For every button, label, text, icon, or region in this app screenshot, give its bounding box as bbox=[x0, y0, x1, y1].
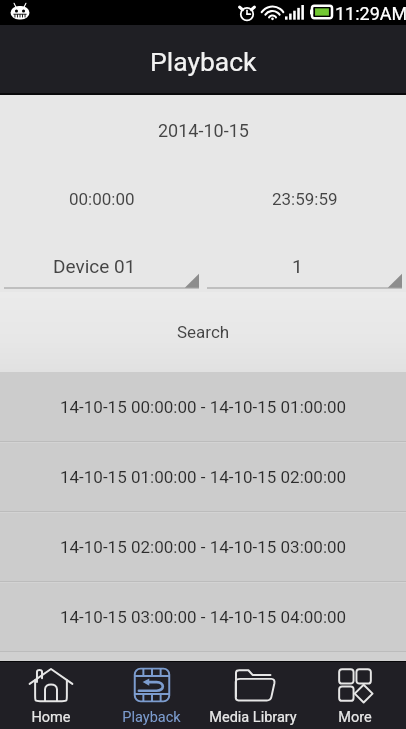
button[interactable]: 00:00:00 bbox=[0, 166, 203, 232]
button[interactable]: Playback bbox=[101, 662, 202, 729]
button[interactable]: Search bbox=[0, 292, 406, 372]
staticText: 14-10-15 00:00:00 - 14-10-15 01:00:00 bbox=[60, 397, 347, 417]
staticText: Search bbox=[177, 322, 230, 342]
button[interactable]: Home bbox=[0, 662, 101, 729]
staticText: Device 01 bbox=[53, 255, 136, 277]
button[interactable]: 1 bbox=[207, 232, 402, 292]
staticText: Playback bbox=[122, 709, 181, 726]
staticText: 1 bbox=[292, 255, 303, 277]
staticText: Playback bbox=[150, 46, 257, 77]
staticText: 14-10-15 01:00:00 - 14-10-15 02:00:00 bbox=[60, 467, 347, 487]
staticText: More bbox=[338, 709, 372, 726]
button[interactable]: Device 01 bbox=[4, 232, 199, 292]
staticText: 14-10-15 02:00:00 - 14-10-15 03:00:00 bbox=[60, 537, 347, 557]
button[interactable]: 23:59:59 bbox=[203, 166, 406, 232]
staticText: Home bbox=[31, 709, 71, 726]
staticText: Media Library bbox=[209, 709, 297, 726]
button[interactable]: Media Library bbox=[202, 662, 304, 729]
staticText: 2014-10-15 bbox=[158, 120, 249, 141]
button[interactable]: 14-10-15 02:00:00 - 14-10-15 03:00:00 bbox=[0, 512, 406, 582]
staticText: 11:29AM bbox=[335, 3, 406, 24]
staticText: 23:59:59 bbox=[272, 189, 338, 209]
button[interactable]: 14-10-15 01:00:00 - 14-10-15 02:00:00 bbox=[0, 442, 406, 512]
button[interactable]: More bbox=[304, 662, 406, 729]
staticText: 14-10-15 03:00:00 - 14-10-15 04:00:00 bbox=[60, 607, 347, 627]
staticText: 00:00:00 bbox=[69, 189, 135, 209]
button[interactable]: 14-10-15 00:00:00 - 14-10-15 01:00:00 bbox=[0, 372, 406, 442]
button[interactable]: 14-10-15 03:00:00 - 14-10-15 04:00:00 bbox=[0, 582, 406, 652]
